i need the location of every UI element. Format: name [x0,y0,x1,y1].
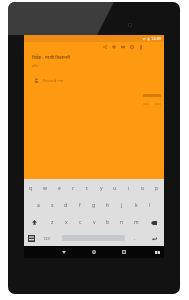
staticText: Record me [43,78,64,83]
button[interactable]: c [73,214,87,231]
button[interactable]: n [115,214,129,231]
staticText: y [100,185,103,192]
button[interactable]: Record me [24,76,164,85]
staticText: m [134,219,139,226]
staticText: s [51,202,54,209]
button[interactable]: t [80,180,94,197]
button[interactable]: Recents [109,248,139,256]
button[interactable]: f [73,197,87,214]
staticText: q [29,185,33,192]
button[interactable]: Favorite [109,42,118,52]
staticText: l [149,202,151,209]
button[interactable]: Shift [24,214,45,231]
staticText: 123 [43,236,50,241]
staticText: f [79,202,81,209]
button[interactable]: k [129,197,143,214]
staticText: शोधा [32,63,39,68]
button[interactable]: g [87,197,101,214]
button[interactable]: Emoji [24,231,38,246]
button[interactable]: a [31,197,45,214]
staticText: v [93,219,96,226]
staticText: विवेक - मराठी डिक्शनरी [32,55,70,61]
button[interactable]: Enter [144,231,164,246]
button[interactable]: u [108,180,122,197]
button[interactable]: 123 [38,231,62,246]
staticText: r [72,185,75,192]
staticText: b [106,219,110,226]
button[interactable]: h [101,197,115,214]
button[interactable]: l [143,197,157,214]
button[interactable]: e [52,180,66,197]
staticText: u [113,185,117,192]
button[interactable]: Home [79,248,109,256]
button[interactable]: Hide keyboard [153,248,161,256]
staticText: w [43,185,47,192]
staticText: e [58,185,61,192]
staticText: d [64,202,68,209]
button[interactable]: x [59,214,73,231]
staticText: g [92,202,96,209]
button[interactable]: w [38,180,52,197]
staticText: z [51,219,54,226]
staticText: i [128,185,130,192]
button[interactable]: Backspace [143,214,164,231]
staticText: h [106,202,110,209]
staticText: k [135,202,138,209]
staticText: . [134,235,136,242]
staticText: c [79,219,82,226]
button[interactable]: z [45,214,59,231]
button[interactable]: Settings [127,42,136,52]
staticText: o [141,185,145,192]
button[interactable]: Back [49,248,79,256]
staticText: p [155,185,159,192]
button[interactable]: o [136,180,150,197]
button[interactable]: d [59,197,73,214]
button[interactable]: History [118,42,127,52]
button[interactable]: s [45,197,59,214]
button[interactable]: i [122,180,136,197]
button[interactable]: b [101,214,115,231]
button[interactable]: r [66,180,80,197]
button[interactable]: p [150,180,164,197]
button[interactable]: q [24,180,38,197]
staticText: a [37,202,40,209]
button[interactable]: y [94,180,108,197]
staticText: t [86,185,88,192]
button[interactable]: More options [136,42,145,52]
button[interactable]: v [87,214,101,231]
staticText: n [120,219,124,226]
staticText: 12:00 [151,36,162,41]
staticText: j [121,202,123,209]
button[interactable]: j [115,197,129,214]
button[interactable]: Share [100,42,109,52]
button[interactable]: m [129,214,143,231]
staticText: x [65,219,68,226]
